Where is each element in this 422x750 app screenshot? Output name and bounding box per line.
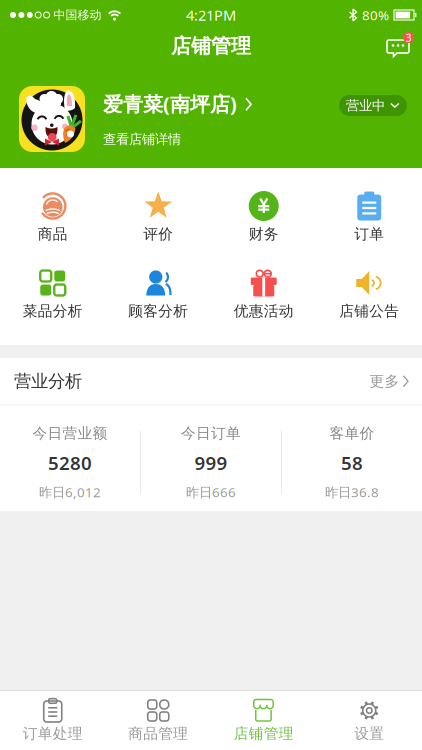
button[interactable]: 店铺公告: [316, 267, 422, 321]
staticText: 昨日36.8: [325, 483, 379, 501]
button[interactable]: 查看店铺详情: [103, 131, 181, 147]
button[interactable]: 爱青菜(南坪店): [103, 90, 253, 117]
staticText: 今日营业额: [32, 424, 107, 442]
staticText: 58: [341, 450, 363, 475]
button[interactable]: 设置: [316, 691, 422, 750]
staticText: 店铺管理: [171, 34, 251, 58]
button[interactable]: 优惠活动: [211, 267, 316, 321]
button[interactable]: 商品: [0, 190, 105, 244]
staticText: 客单价: [329, 424, 374, 442]
button[interactable]: 订单: [316, 190, 422, 244]
staticText: 80%: [362, 6, 389, 24]
staticText: 今日订单: [181, 424, 241, 442]
staticText: 订单: [354, 225, 384, 243]
staticText: 商品管理: [128, 724, 188, 742]
button[interactable]: 财务: [211, 190, 316, 244]
button[interactable]: 订单处理: [0, 691, 105, 750]
button[interactable]: 顾客分析: [105, 267, 211, 321]
staticText: 4:21PM: [186, 5, 236, 25]
staticText: 营业中: [346, 97, 385, 114]
button[interactable]: 店铺管理: [211, 691, 316, 750]
staticText: 店铺公告: [339, 302, 399, 320]
staticText: 更多: [369, 372, 399, 390]
staticText: 爱青菜(南坪店): [103, 90, 237, 117]
staticText: 财务: [249, 225, 279, 243]
button[interactable]: 更多: [369, 372, 410, 390]
staticText: 昨日666: [186, 483, 236, 501]
staticText: 菜品分析: [23, 302, 83, 320]
staticText: 营业分析: [14, 371, 82, 392]
button[interactable]: 营业中: [339, 95, 407, 116]
button[interactable]: 菜品分析: [0, 267, 105, 321]
staticText: 昨日6,012: [39, 483, 101, 501]
button[interactable]: Messages: [382, 31, 414, 61]
staticText: 店铺管理: [234, 724, 294, 742]
staticText: 商品: [38, 225, 68, 243]
button[interactable]: 商品管理: [105, 691, 211, 750]
staticText: 5280: [48, 450, 92, 475]
staticText: 顾客分析: [128, 302, 188, 320]
staticText: 优惠活动: [234, 302, 294, 320]
staticText: 设置: [354, 724, 384, 742]
staticText: 查看店铺详情: [103, 131, 181, 147]
staticText: 订单处理: [23, 724, 83, 742]
staticText: 999: [194, 450, 227, 475]
staticText: 评价: [143, 225, 173, 243]
staticText: 中国移动: [54, 8, 102, 22]
staticText: 3: [405, 30, 411, 45]
button[interactable]: 评价: [105, 190, 211, 244]
